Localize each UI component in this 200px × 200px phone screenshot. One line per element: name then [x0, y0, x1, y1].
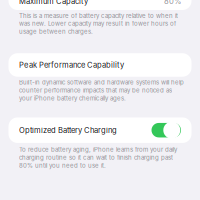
button[interactable]: Peak Performance Capability	[8, 53, 191, 77]
staticText: To reduce battery aging, iPhone learns f…	[19, 146, 177, 169]
staticText: 80%	[164, 0, 181, 6]
staticText: This is a measure of battery capacity re…	[19, 12, 178, 35]
staticText: Maximum Capacity	[19, 0, 88, 6]
staticText: Peak Performance Capability	[19, 60, 124, 70]
button[interactable]: Optimized Battery Charging	[8, 117, 191, 143]
staticText: Optimized Battery Charging	[19, 126, 117, 135]
button[interactable]: Maximum Capacity	[8, 0, 191, 11]
staticText: Built-in dynamic software and hardware s…	[19, 79, 184, 102]
